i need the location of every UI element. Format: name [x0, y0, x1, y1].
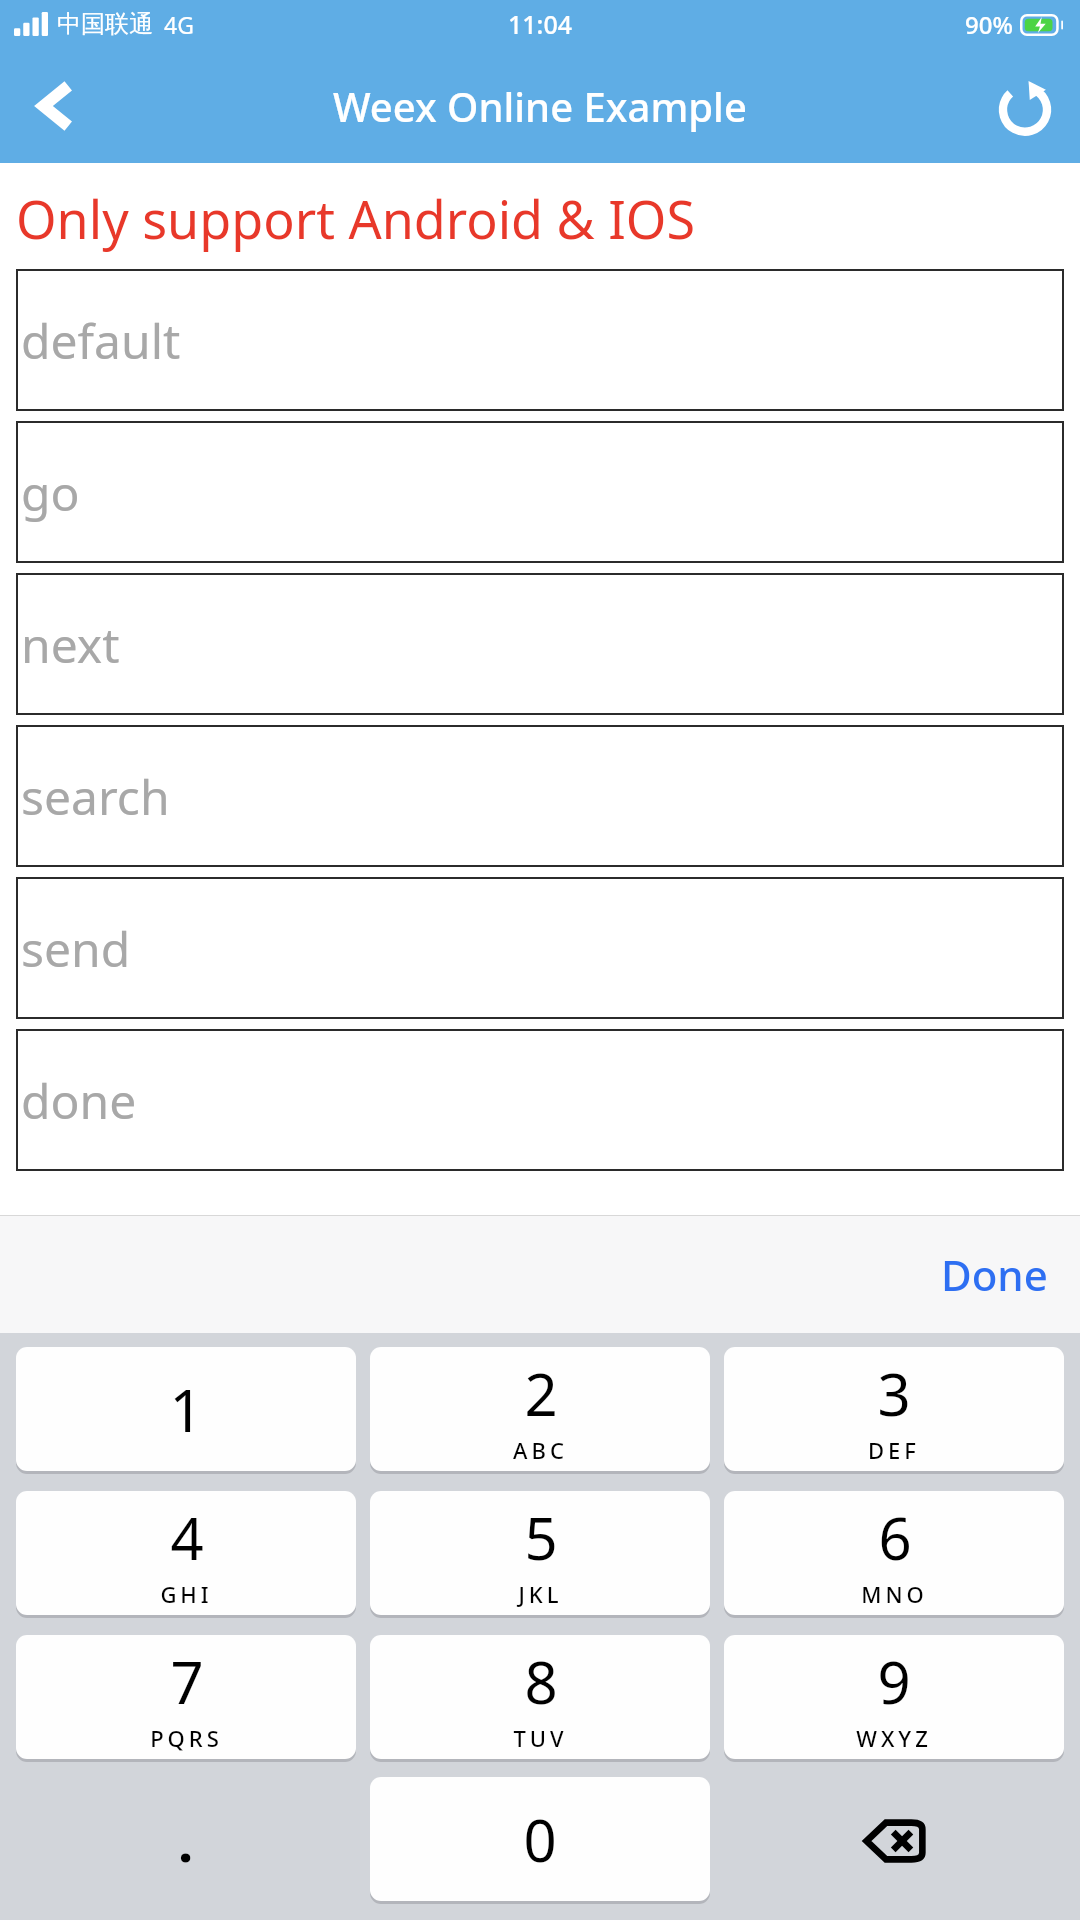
staticText: 6	[878, 1498, 912, 1577]
button[interactable]: 9	[724, 1635, 1064, 1759]
button[interactable]: done	[16, 1029, 1064, 1171]
staticText: Only support Android & IOS	[16, 183, 695, 254]
staticText: done	[21, 1068, 137, 1133]
button[interactable]: Refresh	[970, 48, 1080, 163]
staticText: send	[21, 916, 131, 981]
staticText: 7	[170, 1642, 204, 1721]
button[interactable]: next	[16, 573, 1064, 715]
button[interactable]: Done	[927, 1234, 1062, 1315]
staticText: 8	[524, 1642, 558, 1721]
staticText: MNO	[861, 1579, 928, 1609]
button[interactable]: default	[16, 269, 1064, 411]
button[interactable]: 3	[724, 1347, 1064, 1471]
staticText: PQRS	[150, 1723, 223, 1753]
staticText: 9	[877, 1642, 911, 1721]
button[interactable]: 7	[16, 1635, 356, 1759]
button[interactable]: 6	[724, 1491, 1064, 1615]
staticText: WXYZ	[856, 1723, 932, 1753]
button[interactable]: 5	[370, 1491, 710, 1615]
staticText: 1	[169, 1370, 203, 1449]
staticText: Weex Online Example	[333, 79, 747, 133]
staticText: search	[21, 764, 170, 829]
staticText: ABC	[513, 1435, 568, 1465]
staticText: 4G	[164, 9, 194, 40]
button[interactable]: 0	[370, 1777, 710, 1901]
staticText: 11:04	[508, 7, 573, 41]
button[interactable]: 2	[370, 1347, 710, 1471]
staticText: DEF	[868, 1435, 920, 1465]
staticText: 3	[877, 1354, 911, 1433]
button[interactable]: Back	[0, 48, 110, 163]
staticText: GHI	[160, 1579, 213, 1609]
button[interactable]: go	[16, 421, 1064, 563]
staticText: next	[21, 612, 120, 677]
button[interactable]: .	[16, 1777, 356, 1904]
button[interactable]: search	[16, 725, 1064, 867]
staticText: default	[21, 308, 181, 373]
staticText: go	[21, 460, 80, 525]
staticText: 90%	[965, 8, 1013, 41]
staticText: 0	[523, 1800, 557, 1879]
staticText: TUV	[513, 1723, 568, 1753]
staticText: JKL	[518, 1579, 563, 1609]
button[interactable]: 8	[370, 1635, 710, 1759]
button[interactable]: 1	[16, 1347, 356, 1471]
button[interactable]: 4	[16, 1491, 356, 1615]
staticText: 4	[170, 1498, 204, 1577]
staticText: .	[178, 1804, 194, 1878]
staticText: 中国联通	[57, 9, 153, 39]
button[interactable]: send	[16, 877, 1064, 1019]
staticText: Done	[941, 1246, 1048, 1303]
button[interactable]: Backspace	[724, 1777, 1064, 1904]
staticText: 2	[524, 1354, 558, 1433]
staticText: 5	[524, 1498, 558, 1577]
